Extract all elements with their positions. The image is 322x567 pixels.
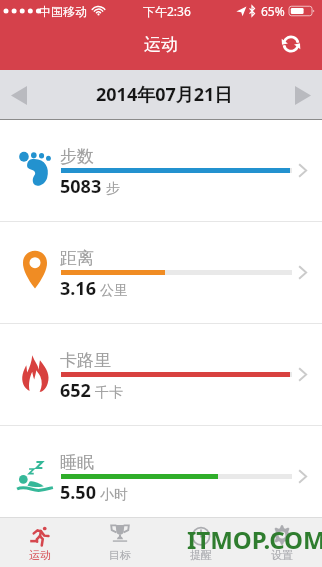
button[interactable]: 距离 bbox=[0, 222, 322, 323]
staticText: 步数 bbox=[60, 146, 94, 167]
staticText: 设置 bbox=[271, 548, 293, 562]
staticText: 目标 bbox=[109, 548, 131, 562]
staticText: 运动 bbox=[29, 548, 51, 562]
staticText: 3.16 bbox=[60, 276, 96, 301]
button[interactable]: Previous day bbox=[4, 80, 34, 110]
staticText: 运动 bbox=[144, 34, 178, 55]
staticText: 5.50 bbox=[60, 480, 96, 505]
staticText: 小时 bbox=[100, 486, 128, 504]
button[interactable]: 睡眠 bbox=[0, 426, 322, 517]
staticText: 步 bbox=[106, 180, 120, 198]
staticText: 公里 bbox=[100, 282, 128, 300]
button[interactable]: Refresh bbox=[277, 32, 305, 56]
staticText: ITMOP.COM bbox=[187, 523, 322, 556]
staticText: 5083 bbox=[60, 174, 102, 199]
button[interactable]: 运动 bbox=[0, 518, 80, 567]
staticText: 卡路里 bbox=[60, 350, 111, 371]
button[interactable]: 目标 bbox=[80, 518, 160, 567]
button[interactable]: 设置 bbox=[241, 518, 322, 567]
button[interactable]: 提醒 bbox=[160, 518, 241, 567]
staticText: 距离 bbox=[60, 248, 94, 269]
staticText: 65% bbox=[261, 3, 285, 19]
staticText: 下午2:36 bbox=[143, 3, 191, 19]
staticText: 提醒 bbox=[190, 548, 212, 562]
staticText: 652 bbox=[60, 378, 91, 403]
button[interactable]: 卡路里 bbox=[0, 324, 322, 425]
button[interactable]: Next day bbox=[288, 80, 318, 110]
staticText: 中国移动 bbox=[39, 4, 87, 19]
button[interactable]: 步数 bbox=[0, 120, 322, 221]
staticText: 千卡 bbox=[95, 384, 123, 402]
staticText: 2014年07月21日 bbox=[96, 82, 233, 107]
staticText: 睡眠 bbox=[60, 452, 94, 473]
